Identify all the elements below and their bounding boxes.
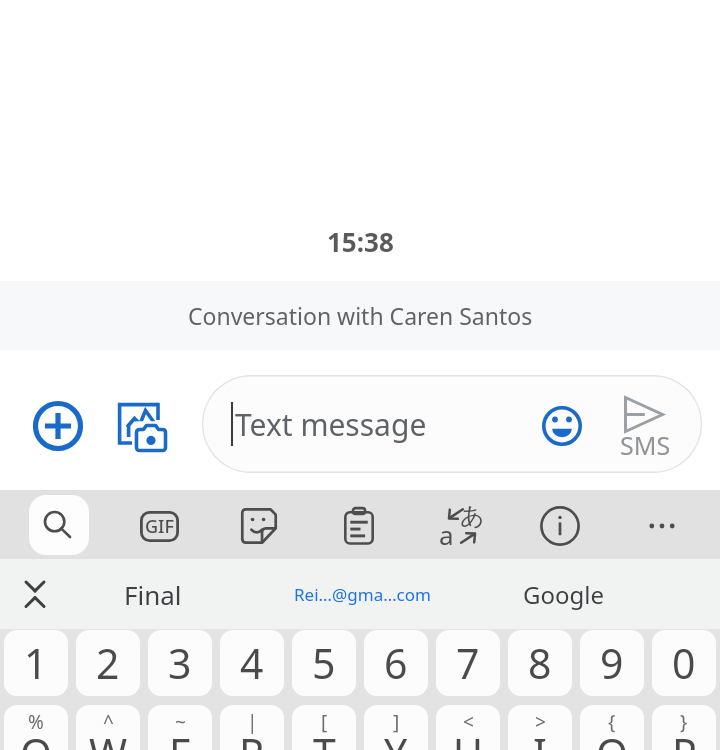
button[interactable]: Clipboard: [326, 493, 392, 559]
staticText: 2: [96, 635, 120, 691]
button[interactable]: ]: [364, 705, 428, 750]
button[interactable]: Final: [66, 559, 240, 629]
staticText: Y: [384, 725, 408, 750]
staticText: I: [533, 725, 547, 750]
button[interactable]: <: [436, 705, 500, 750]
staticText: T: [313, 725, 336, 750]
staticText: 8: [528, 635, 552, 691]
button[interactable]: Search: [29, 495, 89, 555]
staticText: }: [680, 709, 688, 735]
staticText: 3: [168, 635, 192, 691]
button[interactable]: 7: [436, 630, 500, 696]
button[interactable]: 2: [76, 630, 140, 696]
staticText: Text message: [235, 404, 427, 445]
staticText: ~: [175, 709, 186, 735]
staticText: E: [169, 725, 192, 750]
staticText: あ: [460, 501, 485, 531]
staticText: R: [239, 725, 265, 750]
button[interactable]: {: [580, 705, 644, 750]
button[interactable]: Collapse suggestions: [7, 566, 63, 622]
staticText: 7: [456, 635, 480, 691]
staticText: >: [535, 709, 546, 735]
staticText: P: [672, 725, 697, 750]
button[interactable]: ~: [148, 705, 212, 750]
staticText: [: [321, 709, 328, 735]
button[interactable]: 3: [148, 630, 212, 696]
button[interactable]: Google: [480, 559, 646, 629]
button[interactable]: ^: [76, 705, 140, 750]
staticText: Conversation with Caren Santos: [188, 300, 533, 331]
button[interactable]: 6: [364, 630, 428, 696]
button[interactable]: 9: [580, 630, 644, 696]
staticText: <: [463, 709, 474, 735]
staticText: 0: [672, 635, 696, 691]
staticText: ^: [103, 709, 114, 735]
staticText: Q: [20, 725, 53, 750]
button[interactable]: [: [292, 705, 356, 750]
button[interactable]: More: [629, 493, 695, 559]
staticText: O: [596, 725, 629, 750]
staticText: %: [28, 709, 44, 735]
staticText: 15:38: [327, 224, 394, 259]
button[interactable]: Translate: [429, 493, 495, 559]
button[interactable]: Emoji: [535, 399, 589, 453]
button[interactable]: 4: [220, 630, 284, 696]
button[interactable]: Sticker: [226, 493, 292, 559]
staticText: 1: [24, 635, 48, 691]
button[interactable]: %: [4, 705, 68, 750]
button[interactable]: Text message: [202, 375, 702, 473]
button[interactable]: |: [220, 705, 284, 750]
staticText: GIF: [145, 514, 174, 539]
button[interactable]: Send image: [108, 393, 176, 461]
staticText: 6: [384, 635, 408, 691]
staticText: a: [439, 517, 454, 552]
staticText: 9: [600, 635, 624, 691]
staticText: Google: [523, 578, 604, 611]
button[interactable]: GIF: [126, 493, 192, 559]
staticText: Rei…@gma…com: [294, 583, 431, 606]
staticText: {: [608, 709, 616, 735]
button[interactable]: Rei…@gma…com: [256, 559, 468, 629]
staticText: |: [247, 709, 258, 735]
staticText: U: [453, 725, 483, 750]
button[interactable]: >: [508, 705, 572, 750]
button[interactable]: 8: [508, 630, 572, 696]
button[interactable]: 0: [652, 630, 716, 696]
button[interactable]: Add attachment: [26, 394, 90, 458]
button[interactable]: Info: [527, 493, 593, 559]
staticText: W: [89, 725, 128, 750]
staticText: 5: [312, 635, 336, 691]
staticText: SMS: [620, 428, 671, 462]
staticText: ]: [393, 709, 400, 735]
button[interactable]: Send SMS: [602, 383, 688, 465]
button[interactable]: 1: [4, 630, 68, 696]
staticText: Final: [124, 577, 182, 612]
button[interactable]: 5: [292, 630, 356, 696]
staticText: 4: [240, 635, 264, 691]
button[interactable]: }: [652, 705, 716, 750]
